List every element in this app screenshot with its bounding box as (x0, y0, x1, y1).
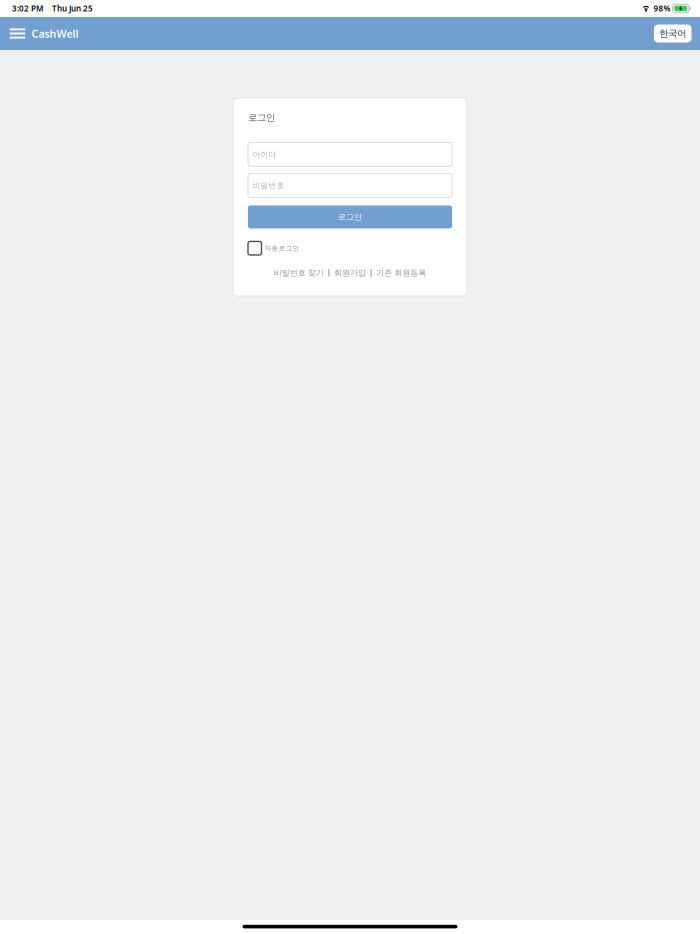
staticText: 한국어 (659, 28, 686, 39)
staticText: 98% (654, 3, 671, 14)
button[interactable]: 로그인 (248, 205, 452, 228)
staticText: 아이디 (252, 150, 276, 159)
staticText: 비밀번호 찾기 (274, 268, 324, 278)
staticText: 로그인 (338, 212, 362, 222)
staticText: CashWell (32, 26, 79, 41)
button[interactable]: 회원가입 (334, 266, 366, 280)
staticText: Thu Jun 25 (52, 3, 93, 14)
button[interactable]: 기존 회원등록 (376, 266, 426, 280)
staticText: 3:02 PM (12, 3, 43, 14)
button[interactable]: Menu (0, 17, 32, 50)
staticText: 기존 회원등록 (376, 268, 426, 278)
staticText: 회원가입 (334, 268, 366, 278)
button[interactable]: 비밀번호 찾기 (274, 266, 324, 280)
button[interactable]: 한국어 (654, 24, 691, 42)
staticText: 자동로그인 (264, 244, 299, 252)
staticText: 로그인 (248, 112, 275, 123)
staticText: 비밀번호 (252, 181, 284, 190)
button[interactable]: 자동로그인 (248, 241, 452, 255)
